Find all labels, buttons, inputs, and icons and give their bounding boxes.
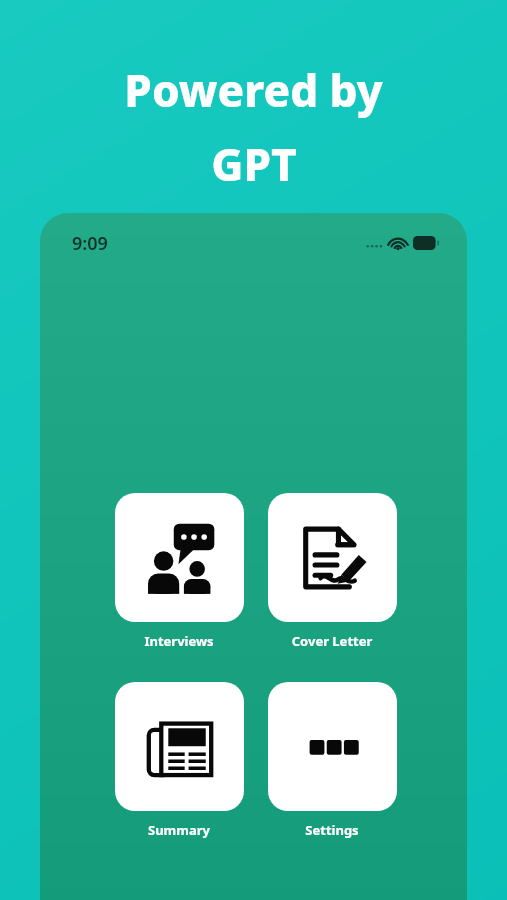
staticText: Settings	[267, 821, 397, 839]
button[interactable]: Summary	[114, 682, 244, 839]
button[interactable]: Interviews	[114, 493, 244, 650]
button[interactable]: Cover Letter	[267, 493, 397, 650]
staticText: Cover Letter	[267, 632, 397, 650]
staticText: 9:09	[72, 231, 108, 256]
button[interactable]: Settings	[267, 682, 397, 839]
staticText: Summary	[114, 821, 244, 839]
staticText: Powered by	[124, 60, 383, 120]
staticText: Interviews	[114, 632, 244, 650]
staticText: GPT	[211, 134, 297, 194]
